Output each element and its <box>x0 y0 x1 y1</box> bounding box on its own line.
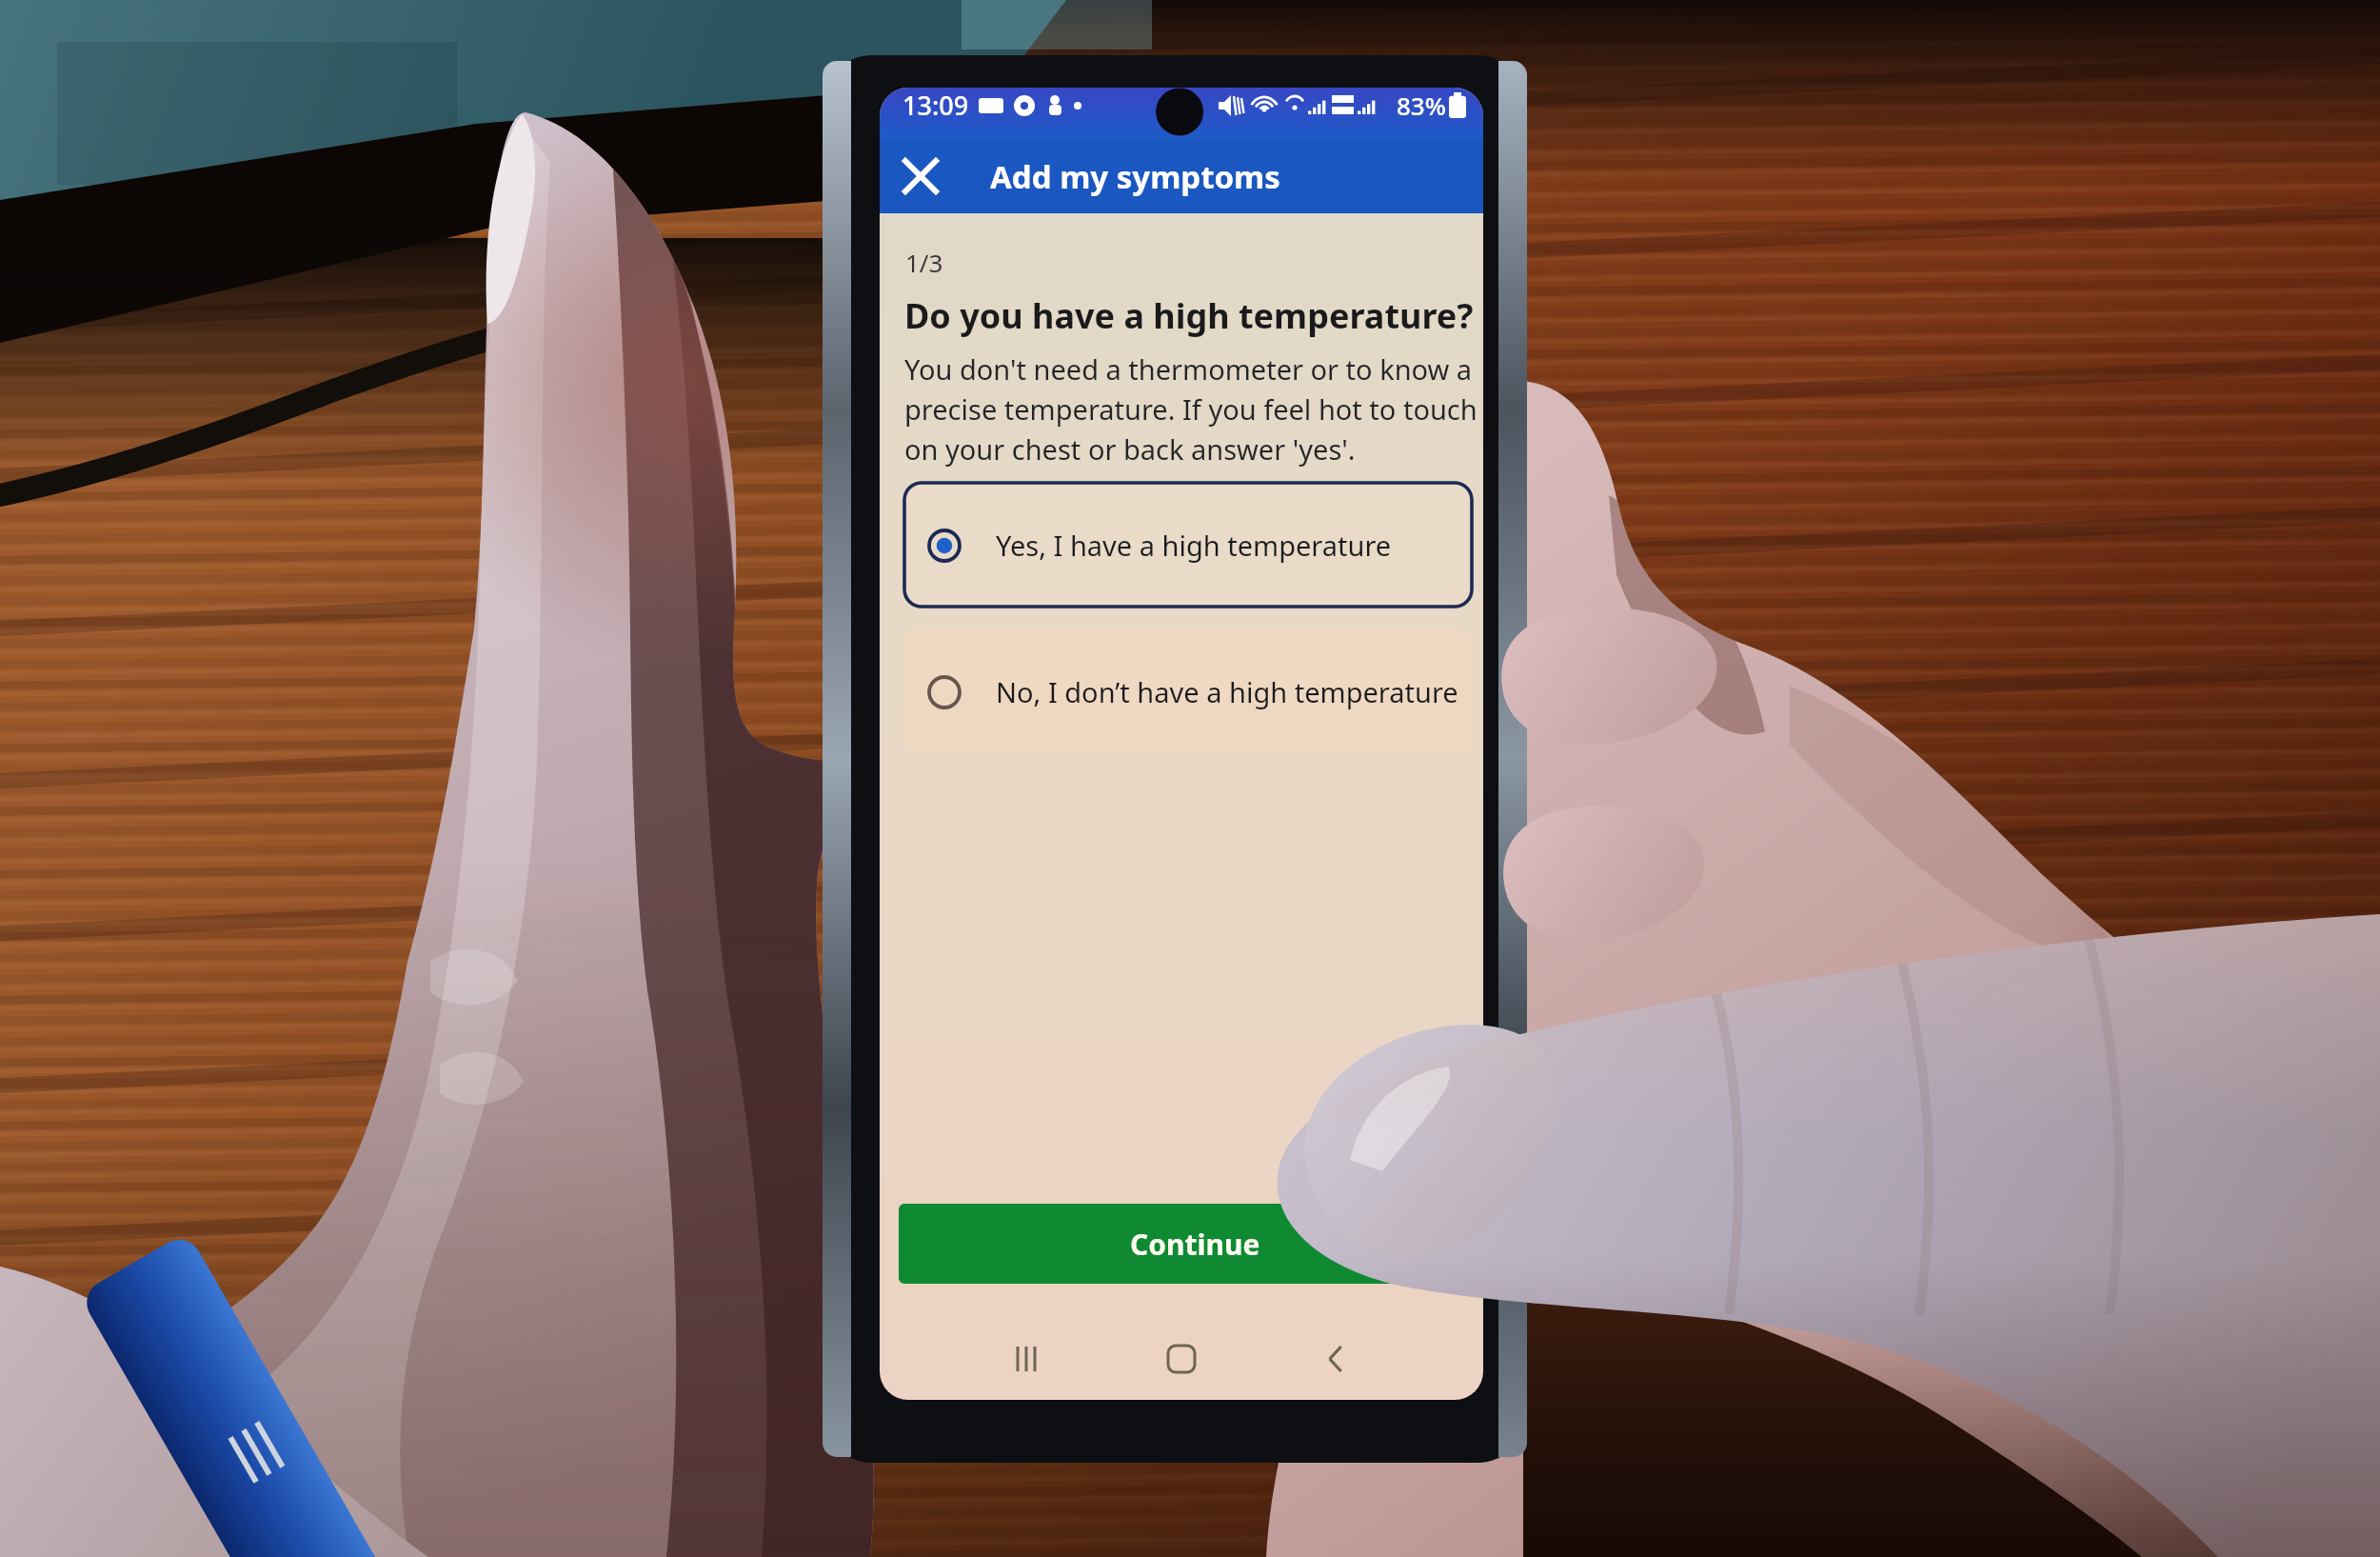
staticText: Add my symptoms <box>990 155 1280 198</box>
staticText: Yes, I have a high temperature <box>996 527 1392 564</box>
staticText: Do you have a high temperature? <box>904 292 1474 339</box>
button[interactable]: No, I don’t have a high temperature <box>902 629 1474 753</box>
button[interactable]: Home <box>1155 1333 1208 1385</box>
button[interactable]: Recents <box>1001 1333 1054 1385</box>
staticText: 1/3 <box>905 246 943 279</box>
button[interactable]: Continue <box>899 1204 1472 1284</box>
button[interactable]: Back <box>1309 1333 1362 1385</box>
staticText: No, I don’t have a high temperature <box>996 673 1458 710</box>
staticText: 83% <box>1397 89 1446 122</box>
staticText: 13:09 <box>902 88 969 123</box>
button[interactable]: Close <box>893 149 948 204</box>
staticText: Continue <box>1130 1225 1260 1264</box>
button[interactable]: Yes, I have a high temperature <box>902 481 1474 609</box>
staticText: You don't need a thermometer or to know … <box>904 350 1481 468</box>
